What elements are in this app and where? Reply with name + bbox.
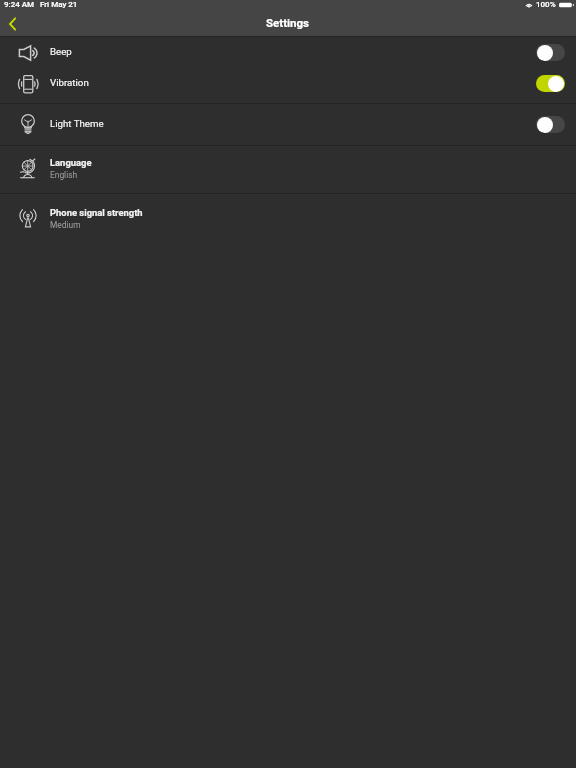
button[interactable]: Light Theme [0,109,576,140]
button[interactable]: Vibration [0,68,576,99]
staticText: Fri May 21 [40,0,78,9]
staticText: Phone signal strength [50,207,143,218]
staticText: Medium [50,220,81,230]
staticText: 100% [536,0,556,9]
button[interactable]: Back [0,12,24,36]
staticText: Vibration [50,77,89,88]
staticText: Settings [266,16,310,29]
staticText: English [50,170,78,180]
button[interactable]: Language [0,150,576,189]
button[interactable] [536,116,565,133]
button[interactable] [536,75,565,92]
button[interactable]: Beep [0,37,576,68]
button[interactable]: Phone signal strength [0,200,576,239]
button[interactable] [536,44,565,61]
staticText: 9:24 AM [4,0,35,9]
staticText: Language [50,157,92,168]
staticText: Light Theme [50,118,104,129]
staticText: Beep [50,46,72,57]
